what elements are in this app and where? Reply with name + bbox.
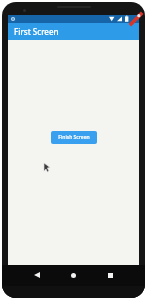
button[interactable]: Recent apps [99, 265, 121, 285]
button[interactable]: First Screen [8, 23, 139, 40]
staticText: Finish Screen [58, 134, 90, 141]
button[interactable]: Back [26, 265, 48, 285]
button[interactable]: Home [62, 265, 84, 285]
button[interactable]: Finish Screen [51, 131, 97, 144]
staticText: First Screen [14, 26, 59, 37]
